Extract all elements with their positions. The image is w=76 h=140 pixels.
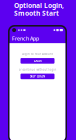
staticText: LOGIN: [33, 59, 41, 63]
staticText: French App: [12, 35, 39, 42]
staticText: Smooth Start: [14, 9, 59, 18]
staticText: or continue without login: [18, 68, 56, 71]
staticText: SKIP LOGIN: [30, 75, 45, 78]
button[interactable]: SKIP LOGIN: [20, 74, 54, 79]
staticText: Optional Login,: [14, 1, 64, 10]
staticText: Login to Your Account: [22, 52, 53, 56]
button[interactable]: LOGIN: [20, 58, 54, 64]
